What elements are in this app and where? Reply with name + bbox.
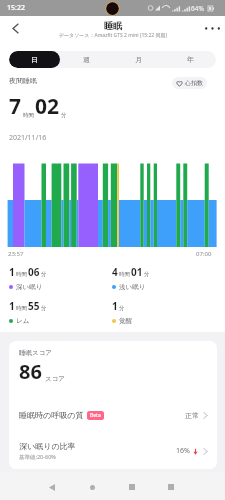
staticText: レム bbox=[16, 317, 30, 325]
button[interactable]: 睡眠時の呼吸の質 bbox=[9, 405, 217, 425]
staticText: 月 bbox=[135, 55, 142, 64]
staticText: 分 bbox=[119, 305, 125, 312]
button[interactable]: 週 bbox=[60, 51, 112, 68]
staticText: 睡眠 bbox=[104, 20, 122, 31]
button[interactable]: Back bbox=[7, 20, 24, 37]
staticText: 07:00 bbox=[196, 250, 212, 258]
staticText: 2021/11/16 bbox=[9, 133, 47, 143]
staticText: 時間 bbox=[16, 271, 27, 278]
button[interactable]: 日 bbox=[9, 51, 60, 68]
staticText: 年 bbox=[187, 55, 194, 64]
staticText: 時間 bbox=[16, 305, 27, 312]
staticText: 02 bbox=[35, 92, 60, 121]
staticText: 55 bbox=[28, 299, 40, 313]
staticText: 深い眠りの比率 bbox=[19, 441, 76, 451]
staticText: 分 bbox=[41, 305, 47, 312]
staticText: データソース：Amazfit GTS 2 mini (15:22 同期) bbox=[59, 32, 167, 39]
button[interactable]: More options bbox=[204, 20, 221, 37]
staticText: 4 bbox=[112, 265, 118, 279]
staticText: 夜間睡眠 bbox=[9, 76, 37, 85]
button[interactable]: 月 bbox=[112, 51, 164, 68]
staticText: 分 bbox=[144, 271, 150, 278]
staticText: 1 bbox=[9, 265, 15, 279]
staticText: 睡眠スコア bbox=[19, 349, 52, 357]
button[interactable]: Recents bbox=[124, 479, 140, 495]
staticText: 正常 bbox=[185, 411, 199, 420]
button[interactable]: Menu bbox=[163, 479, 179, 495]
button[interactable]: Home bbox=[84, 479, 100, 495]
staticText: 深い眠り bbox=[16, 283, 43, 291]
staticText: 1 bbox=[9, 299, 15, 313]
button[interactable]: 心拍数 bbox=[172, 77, 207, 89]
staticText: 覚醒 bbox=[119, 317, 132, 325]
staticText: 週 bbox=[83, 55, 90, 64]
staticText: 64% bbox=[191, 4, 204, 13]
button[interactable]: Back bbox=[44, 479, 60, 495]
staticText: 睡眠時の呼吸の質 bbox=[19, 410, 84, 420]
staticText: 時間 bbox=[23, 112, 34, 119]
staticText: 15:22 bbox=[7, 3, 25, 13]
staticText: 基準値:20-60% bbox=[19, 453, 56, 461]
button[interactable]: 深い眠りの比率 bbox=[9, 436, 217, 466]
staticText: Beta bbox=[90, 412, 101, 419]
staticText: 23:57 bbox=[8, 250, 24, 258]
staticText: 01 bbox=[131, 265, 143, 279]
staticText: スコア bbox=[45, 375, 65, 383]
staticText: 7 bbox=[9, 92, 22, 121]
button[interactable]: 年 bbox=[164, 51, 216, 68]
staticText: 86 bbox=[19, 358, 42, 385]
staticText: 心拍数 bbox=[185, 79, 203, 87]
staticText: 1 bbox=[112, 299, 118, 313]
staticText: 分 bbox=[41, 271, 47, 278]
staticText: 分 bbox=[61, 112, 67, 119]
staticText: 浅い眠り bbox=[119, 283, 146, 291]
staticText: 06 bbox=[28, 265, 40, 279]
staticText: 16% bbox=[176, 446, 190, 456]
staticText: 時間 bbox=[119, 271, 130, 278]
staticText: 日 bbox=[31, 55, 38, 64]
